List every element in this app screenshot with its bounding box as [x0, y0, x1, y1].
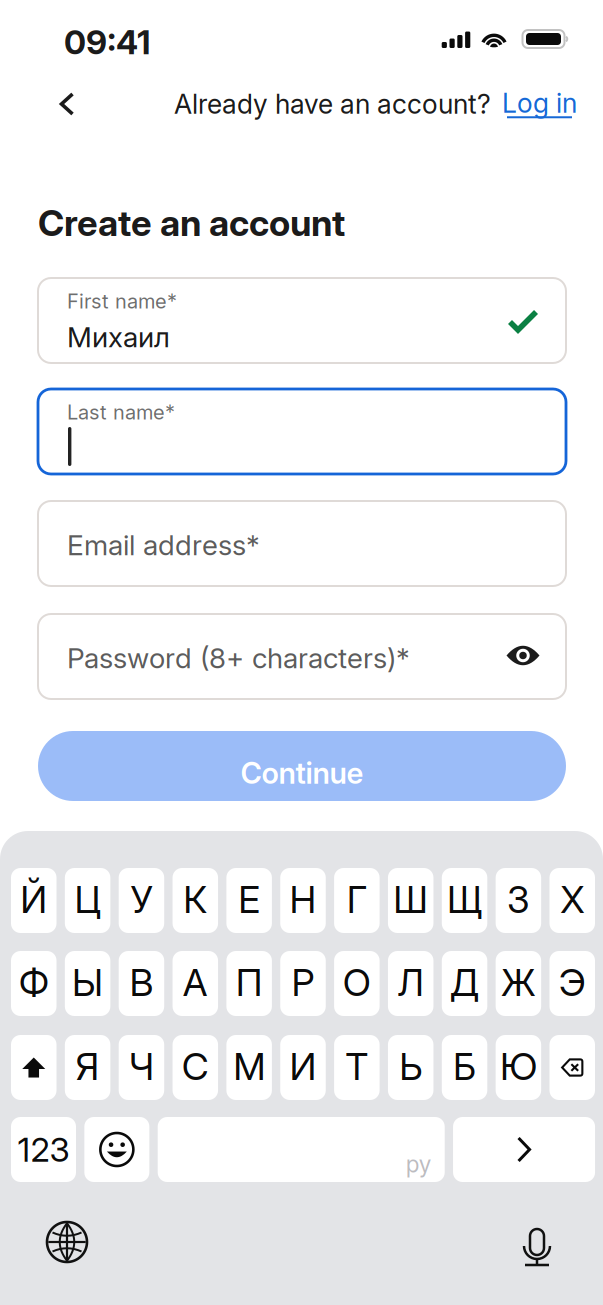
button[interactable]: Log in: [502, 87, 577, 121]
staticText: Email address*: [67, 528, 260, 562]
staticText: Ю: [500, 1044, 537, 1089]
staticText: Continue: [240, 755, 363, 791]
button[interactable]: First name*: [38, 278, 566, 363]
button[interactable]: Ы: [65, 951, 110, 1016]
button[interactable]: Б: [442, 1035, 487, 1100]
staticText: Х: [560, 877, 584, 922]
staticText: Д: [450, 960, 479, 1005]
staticText: Password (8+ characters)*: [67, 641, 410, 675]
staticText: Б: [453, 1044, 476, 1089]
button[interactable]: Email address*: [38, 501, 566, 586]
button[interactable]: Х: [549, 868, 595, 933]
button[interactable]: Э: [549, 951, 595, 1016]
staticText: 09:41: [64, 22, 151, 62]
staticText: Щ: [447, 877, 482, 922]
staticText: Last name*: [67, 400, 175, 424]
staticText: Я: [76, 1044, 100, 1089]
staticText: Г: [347, 877, 367, 922]
button[interactable]: Г: [334, 868, 380, 933]
button[interactable]: С: [173, 1035, 218, 1100]
button[interactable]: П: [226, 951, 272, 1016]
staticText: О: [343, 960, 371, 1005]
staticText: Create an account: [38, 201, 345, 245]
button[interactable]: З: [496, 868, 541, 933]
staticText: Т: [345, 1044, 368, 1089]
staticText: Э: [559, 960, 586, 1005]
staticText: З: [507, 877, 530, 922]
button[interactable]: Space: [158, 1117, 445, 1182]
button[interactable]: Т: [334, 1035, 380, 1100]
button[interactable]: О: [334, 951, 380, 1016]
button[interactable]: Continue: [38, 731, 566, 801]
staticText: М: [233, 1044, 265, 1089]
button[interactable]: Ь: [388, 1035, 433, 1100]
button[interactable]: Н: [280, 868, 326, 933]
button[interactable]: М: [226, 1035, 272, 1100]
staticText: Ж: [501, 960, 536, 1005]
staticText: С: [182, 1044, 209, 1089]
button[interactable]: Last name*: [38, 389, 566, 474]
button[interactable]: Ю: [496, 1035, 541, 1100]
button[interactable]: Ф: [11, 951, 56, 1016]
button[interactable]: Emoji: [84, 1117, 149, 1182]
button[interactable]: Return: [453, 1117, 595, 1182]
button[interactable]: Next keyboard: [37, 1212, 97, 1272]
staticText: Ч: [129, 1044, 154, 1089]
staticText: А: [183, 960, 208, 1005]
staticText: Михаил: [67, 320, 170, 354]
button[interactable]: Ц: [65, 868, 110, 933]
staticText: Log in: [502, 87, 577, 119]
staticText: Е: [238, 877, 260, 922]
button[interactable]: Е: [226, 868, 272, 933]
staticText: 123: [17, 1129, 69, 1170]
staticText: Ц: [75, 877, 101, 922]
button[interactable]: Л: [388, 951, 433, 1016]
button[interactable]: К: [173, 868, 218, 933]
staticText: В: [129, 960, 153, 1005]
staticText: Л: [397, 960, 424, 1005]
button[interactable]: Ж: [496, 951, 541, 1016]
button[interactable]: Password (8+ characters)*: [38, 614, 566, 699]
staticText: Ь: [399, 1044, 422, 1089]
button[interactable]: У: [119, 868, 164, 933]
staticText: Н: [289, 877, 316, 922]
staticText: К: [183, 877, 207, 922]
button[interactable]: А: [173, 951, 218, 1016]
button[interactable]: Ш: [388, 868, 433, 933]
button[interactable]: Я: [65, 1035, 110, 1100]
staticText: У: [130, 877, 152, 922]
staticText: Already have an account?: [174, 88, 491, 120]
staticText: Й: [20, 877, 47, 922]
button[interactable]: В: [119, 951, 164, 1016]
button[interactable]: Delete: [549, 1035, 595, 1100]
button[interactable]: Shift: [11, 1035, 56, 1100]
button[interactable]: Dictation: [507, 1212, 567, 1272]
staticText: П: [236, 960, 263, 1005]
staticText: First name*: [67, 289, 177, 313]
staticText: Ш: [393, 877, 428, 922]
button[interactable]: Й: [11, 868, 56, 933]
button[interactable]: Ч: [119, 1035, 164, 1100]
button[interactable]: Д: [442, 951, 487, 1016]
staticText: Р: [291, 960, 314, 1005]
staticText: Ы: [72, 960, 103, 1005]
button[interactable]: Щ: [442, 868, 487, 933]
staticText: ру: [406, 1151, 432, 1178]
button[interactable]: И: [280, 1035, 326, 1100]
button[interactable]: 123: [11, 1117, 76, 1182]
staticText: Ф: [19, 960, 49, 1005]
button[interactable]: Р: [280, 951, 326, 1016]
staticText: И: [289, 1044, 316, 1089]
button[interactable]: Back: [42, 79, 92, 129]
